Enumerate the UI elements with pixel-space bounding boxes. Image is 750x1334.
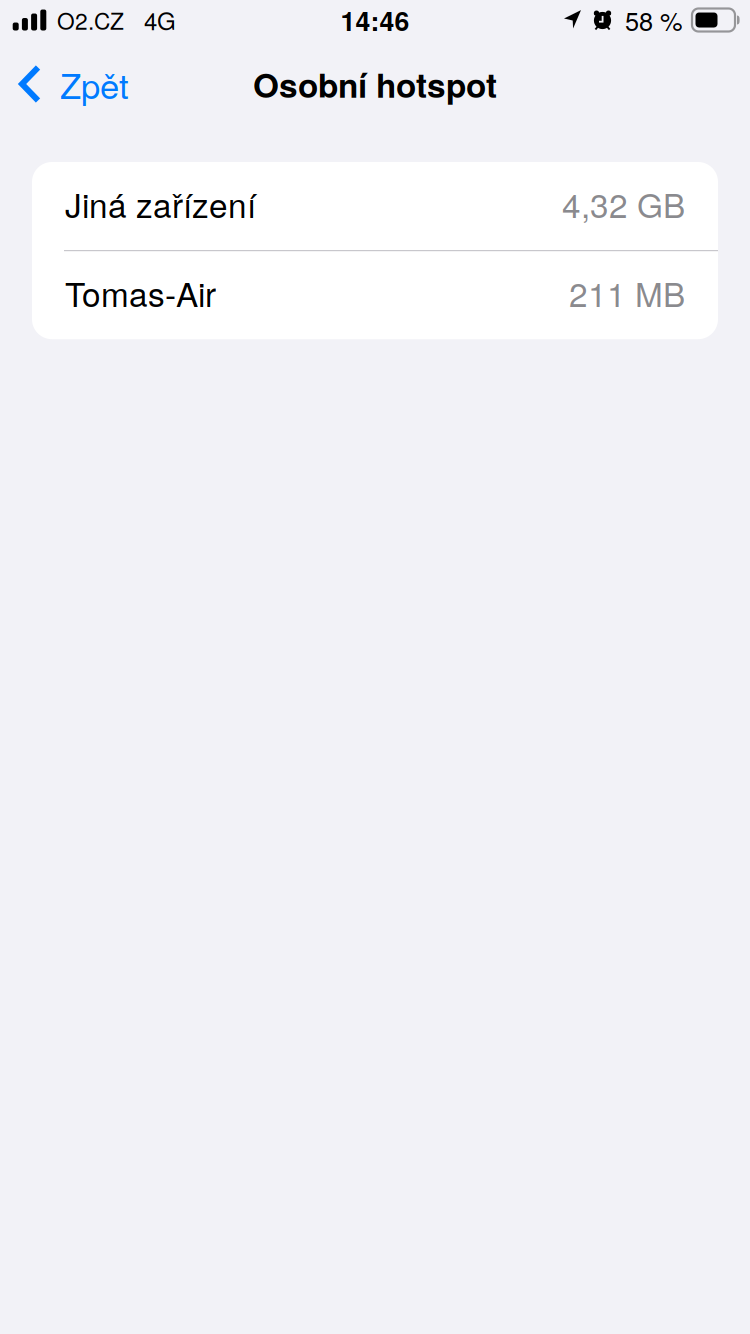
staticText: 4,32 GB [562, 180, 685, 227]
staticText: Zpět [60, 59, 129, 109]
button[interactable]: Tomas-Air [32, 251, 718, 339]
staticText: 58 % [625, 2, 683, 38]
staticText: 4G [144, 3, 176, 37]
staticText: 14:46 [340, 1, 409, 39]
button[interactable]: Jiná zařízení [32, 162, 718, 250]
staticText: 211 MB [569, 269, 685, 316]
button[interactable]: Zpět [0, 40, 143, 128]
staticText: Jiná zařízení [65, 180, 256, 227]
staticText: O2.CZ [57, 4, 124, 36]
staticText: Osobní hotspot [253, 60, 497, 108]
staticText: Tomas-Air [65, 269, 216, 316]
